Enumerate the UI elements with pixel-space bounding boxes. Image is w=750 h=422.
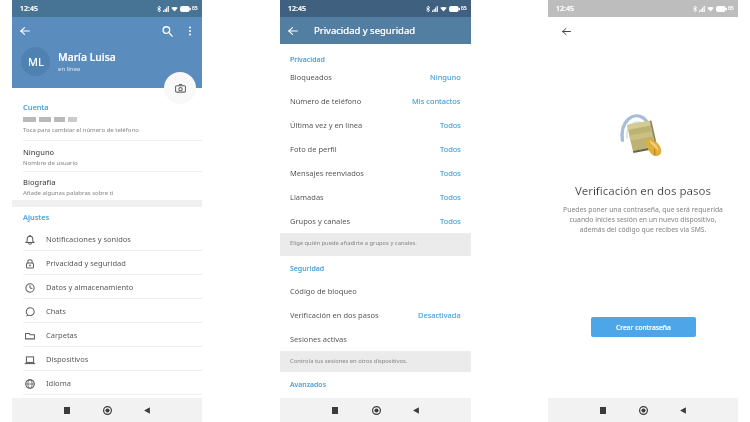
button[interactable]: Llamadas <box>280 185 471 209</box>
button[interactable]: Notificaciones y sonidos <box>12 227 202 251</box>
button[interactable]: Back <box>284 22 302 40</box>
button[interactable]: Bloqueados <box>280 65 471 89</box>
button[interactable]: Home <box>368 402 384 418</box>
staticText: 12:45 <box>288 4 306 14</box>
button[interactable]: Sesiones activas <box>280 327 471 351</box>
button[interactable]: Chats <box>12 299 202 323</box>
staticText: Todos <box>440 216 461 226</box>
button[interactable]: Back <box>16 22 34 40</box>
staticText: Todos <box>440 168 461 178</box>
staticText: 65 <box>461 5 467 12</box>
staticText: Notificaciones y sonidos <box>46 234 131 244</box>
staticText: Cuenta <box>23 102 49 112</box>
staticText: María Luisa <box>58 50 116 64</box>
staticText: Ajustes <box>23 212 50 222</box>
button[interactable]: Crear contraseña <box>591 317 696 337</box>
staticText: Desactivada <box>418 310 461 320</box>
staticText: Seguridad <box>290 264 325 274</box>
button[interactable]: Mensajes reenviados <box>280 161 471 185</box>
button[interactable]: Última vez y en línea <box>280 113 471 137</box>
staticText: 12:45 <box>20 4 38 14</box>
button[interactable]: Número de teléfono <box>280 89 471 113</box>
staticText: Mensajes reenviados <box>290 168 364 178</box>
staticText: Código de bloqueo <box>290 286 357 296</box>
button[interactable]: Back <box>557 22 575 40</box>
staticText: Biografía <box>23 177 56 187</box>
button[interactable]: Back <box>139 402 155 418</box>
button[interactable]: Datos y almacenamiento <box>12 275 202 299</box>
staticText: Número de teléfono <box>290 96 362 106</box>
staticText: Privacidad <box>290 55 325 65</box>
button[interactable]: Idioma <box>12 371 202 395</box>
button[interactable]: Dispositivos <box>12 347 202 371</box>
staticText: Chats <box>46 306 66 316</box>
staticText: Crear contraseña <box>616 323 671 332</box>
staticText: Llamadas <box>290 192 324 202</box>
staticText: Todos <box>440 120 461 130</box>
button[interactable]: Back <box>408 402 424 418</box>
staticText: Ninguno <box>430 72 461 82</box>
staticText: Nombre de usuario <box>23 159 78 167</box>
staticText: Foto de perfil <box>290 144 337 154</box>
staticText: Verificación en dos pasos <box>290 310 379 320</box>
button[interactable]: Foto de perfil <box>280 137 471 161</box>
staticText: Privacidad y seguridad <box>46 258 126 268</box>
staticText: Dispositivos <box>46 354 89 364</box>
button[interactable]: More options <box>182 23 198 39</box>
button[interactable]: Recents <box>595 402 611 418</box>
staticText: ML <box>28 54 44 69</box>
staticText: en línea <box>58 65 81 73</box>
button[interactable]: Home <box>635 402 651 418</box>
staticText: Grupos y canales <box>290 216 351 226</box>
staticText: Sesiones activas <box>290 334 347 344</box>
button[interactable]: Privacidad y seguridad <box>12 251 202 275</box>
button[interactable]: Search <box>158 22 176 40</box>
staticText: Última vez y en línea <box>290 120 363 130</box>
button[interactable]: Back <box>675 402 691 418</box>
staticText: Puedes poner una contraseña, que será re… <box>563 205 723 234</box>
button[interactable]: Grupos y canales <box>280 209 471 233</box>
staticText: Controla tus sesiones en otros dispositi… <box>290 357 408 365</box>
staticText: Todos <box>440 144 461 154</box>
staticText: Privacidad y seguridad <box>314 24 416 37</box>
staticText: Toca para cambiar el número de teléfono <box>23 126 139 134</box>
staticText: Carpetas <box>46 330 78 340</box>
button[interactable]: Recents <box>59 402 75 418</box>
button[interactable]: Change photo <box>164 72 196 104</box>
staticText: 65 <box>728 5 734 12</box>
staticText: Datos y almacenamiento <box>46 282 134 292</box>
staticText: Verificación en dos pasos <box>575 183 711 199</box>
button[interactable]: Recents <box>327 402 343 418</box>
button[interactable]: Home <box>99 402 115 418</box>
staticText: Avanzados <box>290 380 327 390</box>
button[interactable]: Carpetas <box>12 323 202 347</box>
staticText: Ninguno <box>23 147 55 157</box>
staticText: 65 <box>192 5 198 12</box>
staticText: Elige quién puede añadirte a grupos y ca… <box>290 239 417 247</box>
staticText: Bloqueados <box>290 72 332 82</box>
staticText: Todos <box>440 192 461 202</box>
button[interactable]: Verificación en dos pasos <box>280 303 471 327</box>
button[interactable]: Código de bloqueo <box>280 279 471 303</box>
staticText: Idioma <box>46 378 71 388</box>
staticText: Mis contactos <box>412 96 461 106</box>
staticText: Añade algunas palabras sobre ti <box>23 189 114 197</box>
staticText: 12:45 <box>556 4 574 14</box>
